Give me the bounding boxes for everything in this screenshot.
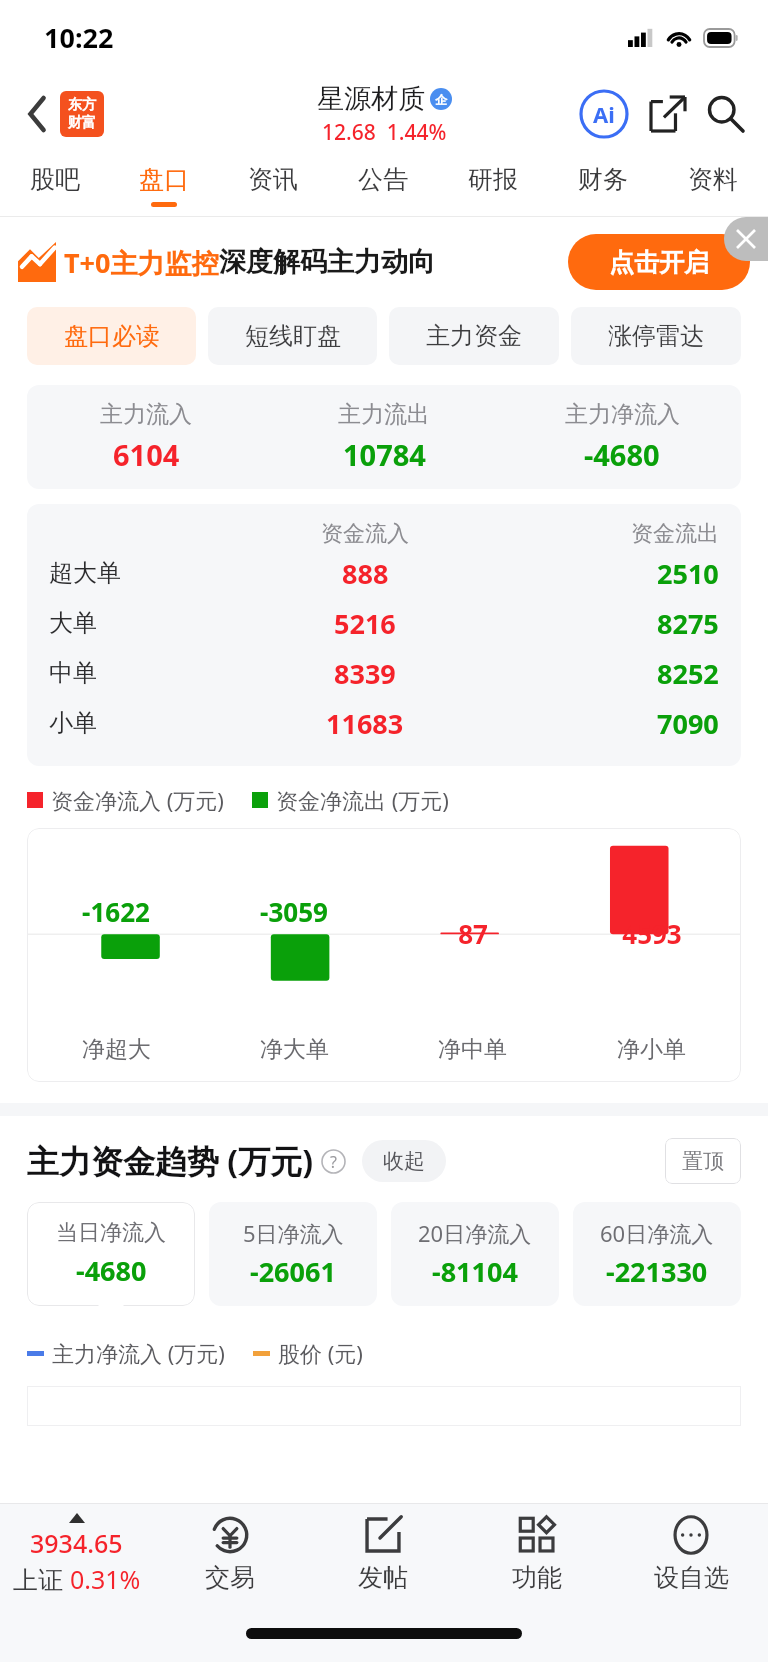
button[interactable]: 资金流入 [27,520,741,748]
button[interactable]: 说明 [321,1149,346,1174]
button[interactable]: 60日净流入 [573,1202,741,1306]
button[interactable]: 盘口必读 [27,307,196,365]
staticText: 上证 [13,1562,70,1596]
button[interactable]: 功能 [460,1504,614,1604]
staticText: 7090 [657,705,719,742]
button[interactable]: 财务 [548,154,658,216]
staticText: 8339 [334,655,396,692]
staticText: 星源材质 [317,82,425,116]
button[interactable]: 资讯 [218,154,328,216]
staticText: 短线盯盘 [245,321,341,351]
button[interactable]: 收起 [362,1140,446,1182]
button[interactable]: 资料 [658,154,768,216]
staticText: 5216 [334,605,396,642]
staticText: 主力流入 [100,400,192,429]
staticText: -81104 [432,1253,518,1290]
button[interactable]: 东方财富 [60,91,104,137]
staticText: 公告 [358,164,408,195]
staticText: -3059 [260,894,328,929]
staticText: 主力流出 [338,400,430,429]
staticText: 2510 [657,555,719,592]
button[interactable]: AI助手 [576,86,632,142]
button[interactable]: 分享 [642,88,694,140]
staticText: 功能 [512,1562,562,1593]
staticText: 主力资金 [426,321,522,351]
staticText: 资金净流出 (万元) [276,785,449,815]
staticText: -4680 [76,1252,147,1289]
staticText: 净超大 [82,1035,151,1064]
staticText: 东方 [68,96,96,114]
button[interactable]: 5日净流入 [209,1202,377,1306]
button[interactable]: 3934.65 [0,1504,153,1604]
staticText: 盘口必读 [64,321,160,351]
staticText: 交易 [205,1562,255,1593]
staticText: 资金净流入 (万元) [51,785,224,815]
staticText: 当日净流入 [56,1219,166,1247]
button[interactable]: 研报 [438,154,548,216]
staticText: T+0主力监控 [64,244,219,281]
staticText: 盘口 [139,164,189,195]
button[interactable]: 公告 [328,154,438,216]
staticText: 3934.65 [30,1526,123,1560]
staticText: 0.31% [70,1562,141,1596]
button[interactable]: 涨停雷达 [571,307,741,365]
staticText: 点击开启 [609,247,709,278]
staticText: 净小单 [617,1035,686,1064]
staticText: 主力净流入 (万元) [52,1338,225,1368]
button[interactable]: 短线盯盘 [208,307,377,365]
button[interactable]: 股吧 [0,154,109,216]
staticText: 深度解码主力动向 [219,245,435,279]
staticText: 资料 [688,164,738,195]
staticText: ? [330,1151,337,1173]
button[interactable]: 发帖 [306,1504,460,1604]
staticText: 发帖 [358,1562,408,1593]
staticText: 6104 [113,435,180,474]
staticText: 收起 [383,1148,425,1174]
staticText: -1622 [82,894,150,929]
button[interactable]: 主力流入 [27,385,741,489]
staticText: Ai [593,99,615,129]
staticText: 资金流入 [321,520,409,548]
staticText: 8252 [657,655,719,692]
staticText: 5日净流入 [243,1218,344,1248]
staticText: 企 [435,92,447,107]
button[interactable]: 20日净流入 [391,1202,559,1306]
button[interactable]: -1622 [27,828,741,1082]
staticText: 10:22 [44,19,114,56]
staticText: 财富 [68,114,96,132]
staticText: 60日净流入 [600,1218,714,1248]
staticText: 超大单 [49,558,121,588]
staticText: -4680 [584,435,660,474]
staticText: 净中单 [438,1035,507,1064]
staticText: 资金流出 [631,520,719,548]
staticText: 净大单 [260,1035,329,1064]
button[interactable]: 搜索 [700,88,752,140]
staticText: 研报 [468,164,518,195]
staticText: -26061 [250,1253,336,1290]
button[interactable]: 关闭 [724,217,768,261]
button[interactable]: 返回 [16,92,60,136]
button[interactable]: 点击开启 [568,234,750,290]
staticText: 11683 [326,705,404,742]
staticText: 大单 [49,608,97,638]
button[interactable]: 盘口 [109,154,218,216]
staticText: 涨停雷达 [608,321,704,351]
staticText: 12.68 1.44% [322,118,447,147]
button[interactable]: 交易 [153,1504,306,1604]
button[interactable]: 主力资金 [389,307,559,365]
button[interactable]: 置顶 [665,1138,741,1184]
staticText: 888 [342,555,389,592]
staticText: 中单 [49,658,97,688]
staticText: 资讯 [248,164,298,195]
button[interactable]: 当日净流入 [27,1202,195,1306]
staticText: 小单 [49,708,97,738]
button[interactable]: 设自选 [614,1504,768,1604]
staticText: 股吧 [30,164,80,195]
staticText: 置顶 [682,1148,724,1174]
staticText: 设自选 [654,1562,729,1593]
staticText: 20日净流入 [418,1218,532,1248]
staticText: -221330 [606,1253,708,1290]
staticText: 87 [458,916,488,951]
staticText: 主力资金趋势 (万元) [27,1139,314,1183]
staticText: 股价 (元) [278,1338,363,1368]
